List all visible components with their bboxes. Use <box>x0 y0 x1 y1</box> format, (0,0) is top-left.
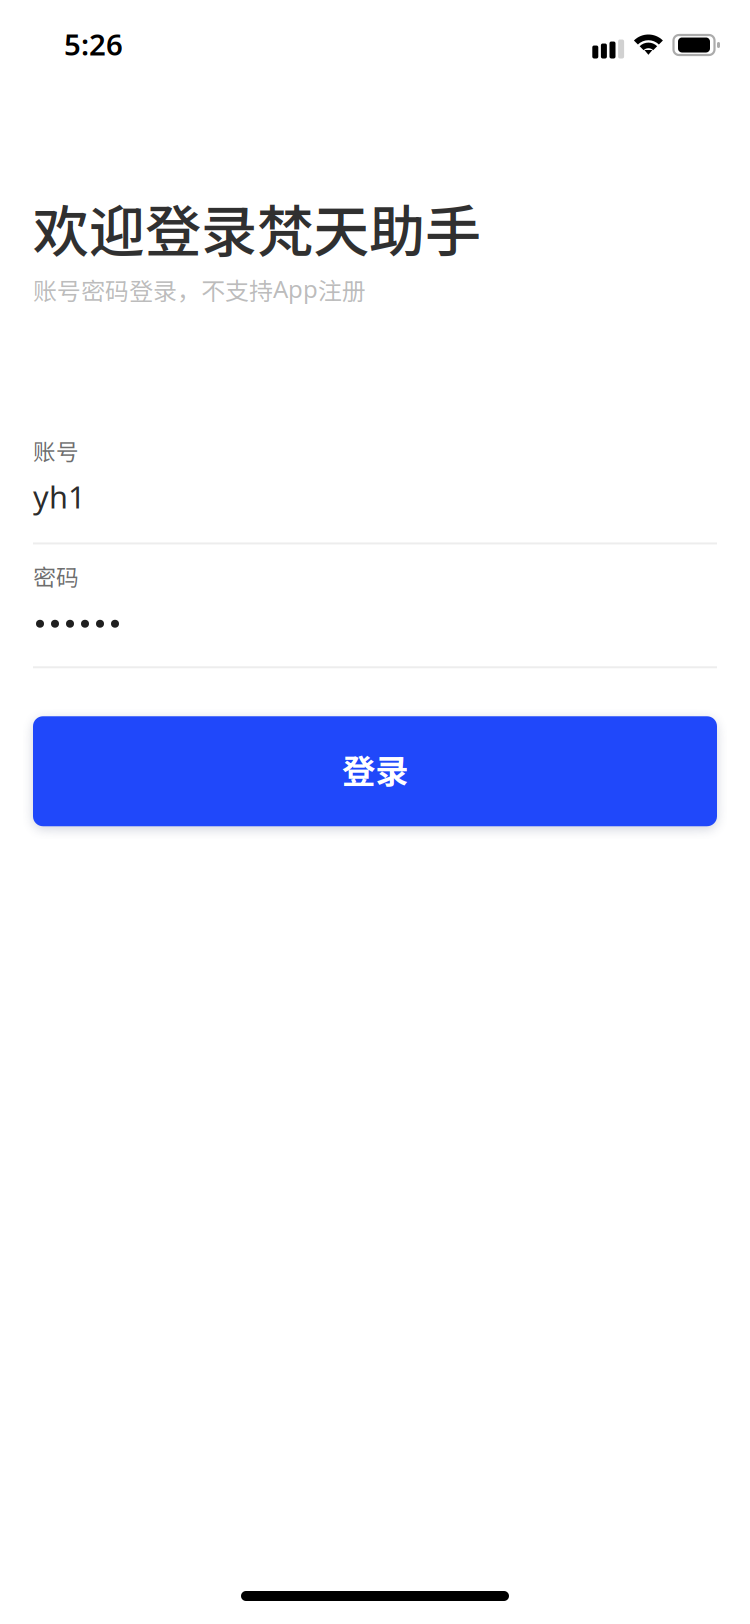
button[interactable]: 登录 <box>33 716 717 826</box>
staticText: 5:26 <box>64 24 123 64</box>
staticText: 密码 <box>33 559 79 592</box>
staticText: 登录 <box>342 745 408 793</box>
staticText: yh1 <box>33 476 86 517</box>
staticText: 账号密码登录，不支持App注册 <box>33 272 366 307</box>
staticText: 账号 <box>33 434 79 467</box>
staticText: 欢迎登录梵天助手 <box>33 187 481 268</box>
